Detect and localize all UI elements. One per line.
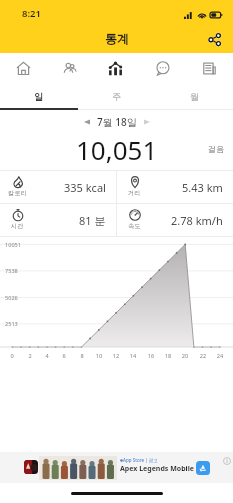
button[interactable]: 칼로리 xyxy=(0,171,116,203)
button[interactable]: 주 xyxy=(77,84,155,108)
button[interactable]: Statistics xyxy=(92,53,139,84)
button[interactable]: Share xyxy=(201,26,227,52)
button[interactable]: 시간 xyxy=(0,204,116,236)
staticText: 10051 xyxy=(5,241,21,249)
staticText: 24 xyxy=(215,352,225,360)
button[interactable]: Ad information xyxy=(222,456,231,465)
staticText: 18 xyxy=(163,352,173,360)
staticText: 20 xyxy=(180,352,190,360)
staticText: 8 xyxy=(77,352,87,360)
staticText: 12 xyxy=(111,352,121,360)
staticText: 6 xyxy=(59,352,69,360)
button[interactable]: Home xyxy=(0,53,46,84)
staticText: 7월 18일 xyxy=(97,115,137,129)
staticText: 81 분 xyxy=(79,213,106,228)
staticText: 시간 xyxy=(11,222,24,230)
button[interactable]: 일 xyxy=(0,84,77,108)
staticText: 0 xyxy=(7,352,17,360)
staticText: 일 xyxy=(34,91,43,102)
staticText: 2513 xyxy=(5,320,18,328)
staticText: 10 xyxy=(94,352,104,360)
staticText: 거리 xyxy=(128,189,141,197)
button[interactable]: Chat xyxy=(139,53,186,84)
staticText: 속도 xyxy=(128,222,141,230)
staticText: App Store | 광고 xyxy=(123,457,158,463)
staticText: 10,051 xyxy=(76,132,158,167)
button[interactable]: Open App Store xyxy=(196,461,210,475)
button[interactable]: Previous day xyxy=(77,112,97,132)
staticText: Apex Legends Mobile xyxy=(120,464,194,474)
staticText: 주 xyxy=(112,91,121,102)
button[interactable]: News xyxy=(186,53,233,84)
button[interactable]: 속도 xyxy=(117,204,233,236)
staticText: 8:21 xyxy=(22,7,41,20)
staticText: 통계 xyxy=(105,31,129,46)
button[interactable]: 거리 xyxy=(117,171,233,203)
button[interactable]: Next day xyxy=(137,112,157,132)
staticText: 5026 xyxy=(5,294,18,302)
staticText: 걸음 xyxy=(208,144,224,154)
staticText: 14 xyxy=(128,352,138,360)
button[interactable]: Friends xyxy=(46,53,92,84)
staticText: 칼로리 xyxy=(8,189,27,197)
button[interactable]: App Store | 광고 xyxy=(0,452,233,483)
staticText: 5.43 km xyxy=(182,180,223,195)
staticText: 4 xyxy=(42,352,52,360)
staticText: 2.78 km/h xyxy=(171,213,223,228)
staticText: 7538 xyxy=(5,267,18,275)
staticText: 335 kcal xyxy=(64,180,106,195)
staticText: 2 xyxy=(25,352,35,360)
staticText: 22 xyxy=(198,352,208,360)
staticText: 16 xyxy=(146,352,156,360)
button[interactable]: 월 xyxy=(155,84,233,108)
staticText: 월 xyxy=(190,91,199,102)
